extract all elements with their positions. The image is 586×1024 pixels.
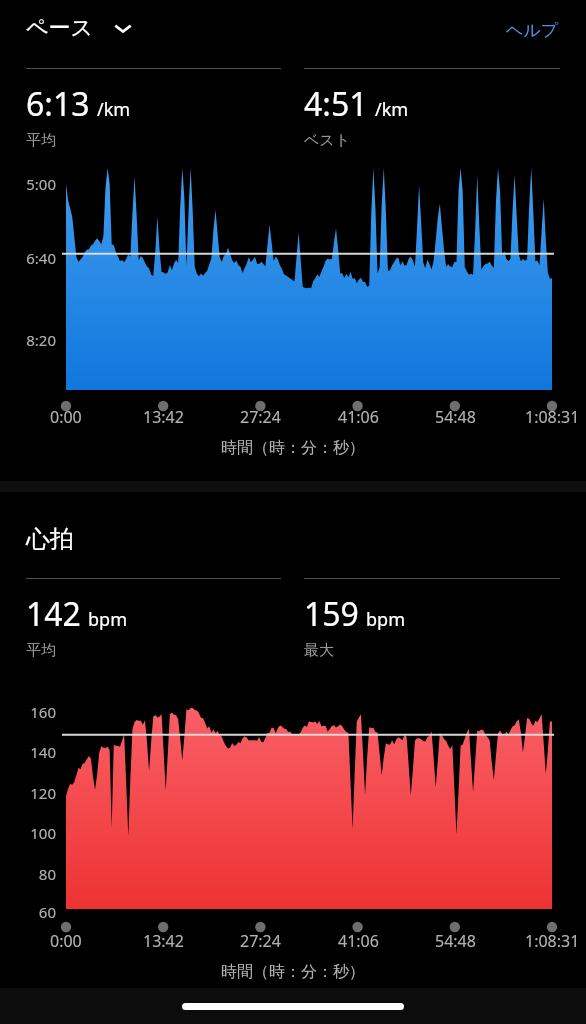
staticText: 100: [0, 823, 56, 843]
staticText: 54:48: [435, 930, 476, 952]
staticText: 41:06: [338, 930, 379, 952]
staticText: 平均: [26, 641, 56, 660]
staticText: 最大: [304, 641, 334, 660]
staticText: 60: [0, 902, 56, 922]
button[interactable]: 142: [26, 578, 281, 660]
staticText: 54:48: [435, 406, 476, 428]
staticText: ベスト: [304, 131, 351, 150]
staticText: 時間（時：分：秒）: [221, 962, 365, 982]
staticText: 27:24: [240, 406, 281, 428]
staticText: 0:00: [50, 406, 82, 428]
staticText: 142: [26, 592, 81, 636]
staticText: 時間（時：分：秒）: [221, 438, 365, 458]
staticText: bpm: [366, 607, 405, 632]
staticText: 5:00: [0, 174, 56, 194]
staticText: 1:08:31: [525, 930, 580, 952]
staticText: 0:00: [50, 930, 82, 952]
staticText: ペース: [26, 14, 94, 42]
staticText: 平均: [26, 131, 56, 150]
staticText: 120: [0, 783, 56, 803]
staticText: 4:51: [304, 82, 368, 126]
staticText: 159: [304, 592, 359, 636]
button[interactable]: 159: [304, 578, 560, 660]
button[interactable]: ヘルプ: [500, 14, 565, 47]
staticText: 41:06: [338, 406, 379, 428]
button[interactable]: 4:51: [304, 68, 560, 150]
staticText: 6:40: [0, 248, 56, 268]
button[interactable]: 6:13: [26, 68, 281, 150]
staticText: 140: [0, 742, 56, 762]
staticText: 160: [0, 702, 56, 722]
staticText: 6:13: [26, 82, 90, 126]
staticText: 13:42: [143, 406, 184, 428]
staticText: 27:24: [240, 930, 281, 952]
button[interactable]: ペース: [26, 14, 142, 48]
staticText: 心拍: [26, 524, 74, 554]
staticText: /km: [97, 97, 131, 122]
staticText: ヘルプ: [506, 20, 559, 41]
staticText: 8:20: [0, 330, 56, 350]
staticText: 80: [0, 864, 56, 884]
staticText: 13:42: [143, 930, 184, 952]
staticText: 1:08:31: [525, 406, 580, 428]
staticText: bpm: [88, 607, 127, 632]
staticText: /km: [375, 97, 409, 122]
